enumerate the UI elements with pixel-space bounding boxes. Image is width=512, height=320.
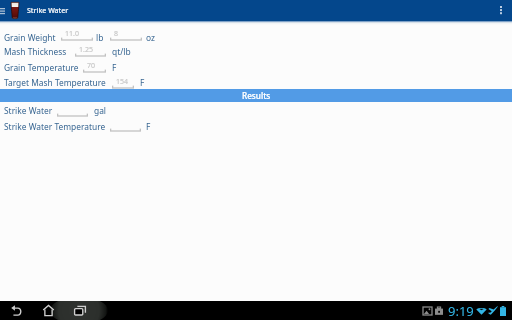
staticText: Strike Water — [27, 6, 69, 16]
staticText: lb — [96, 32, 104, 43]
button[interactable]: Recent apps — [69, 301, 91, 320]
staticText: Grain Temperature — [4, 62, 79, 73]
button[interactable]: 8 — [110, 28, 142, 42]
staticText: 1.25 — [79, 45, 93, 55]
staticText: 8 — [114, 29, 119, 39]
button[interactable]: Open navigation drawer — [0, 0, 10, 21]
staticText: 70 — [87, 61, 96, 71]
button[interactable]: More options — [490, 0, 512, 21]
staticText: Strike Water — [4, 105, 53, 116]
staticText: F — [140, 77, 145, 88]
staticText: F — [146, 121, 151, 132]
staticText: Strike Water Temperature — [4, 121, 106, 132]
button[interactable] — [110, 119, 141, 133]
staticText: oz — [146, 32, 155, 43]
staticText: 11.0 — [65, 29, 79, 39]
staticText: Target Mash Temperature — [4, 77, 106, 88]
button[interactable]: 154 — [112, 76, 134, 90]
staticText: Grain Weight — [4, 32, 56, 43]
staticText: Results — [242, 90, 271, 101]
button[interactable] — [57, 104, 88, 118]
button[interactable]: Back — [5, 301, 27, 320]
button[interactable]: 70 — [83, 60, 106, 74]
button[interactable]: Home — [37, 301, 59, 320]
staticText: 9:19 — [448, 302, 474, 320]
staticText: Mash Thickness — [4, 46, 67, 57]
button[interactable]: 1.25 — [75, 44, 106, 58]
staticText: 154 — [116, 77, 129, 87]
button[interactable]: 11.0 — [61, 28, 93, 42]
staticText: F — [112, 62, 117, 73]
staticText: gal — [94, 105, 107, 116]
staticText: qt/lb — [112, 46, 131, 57]
